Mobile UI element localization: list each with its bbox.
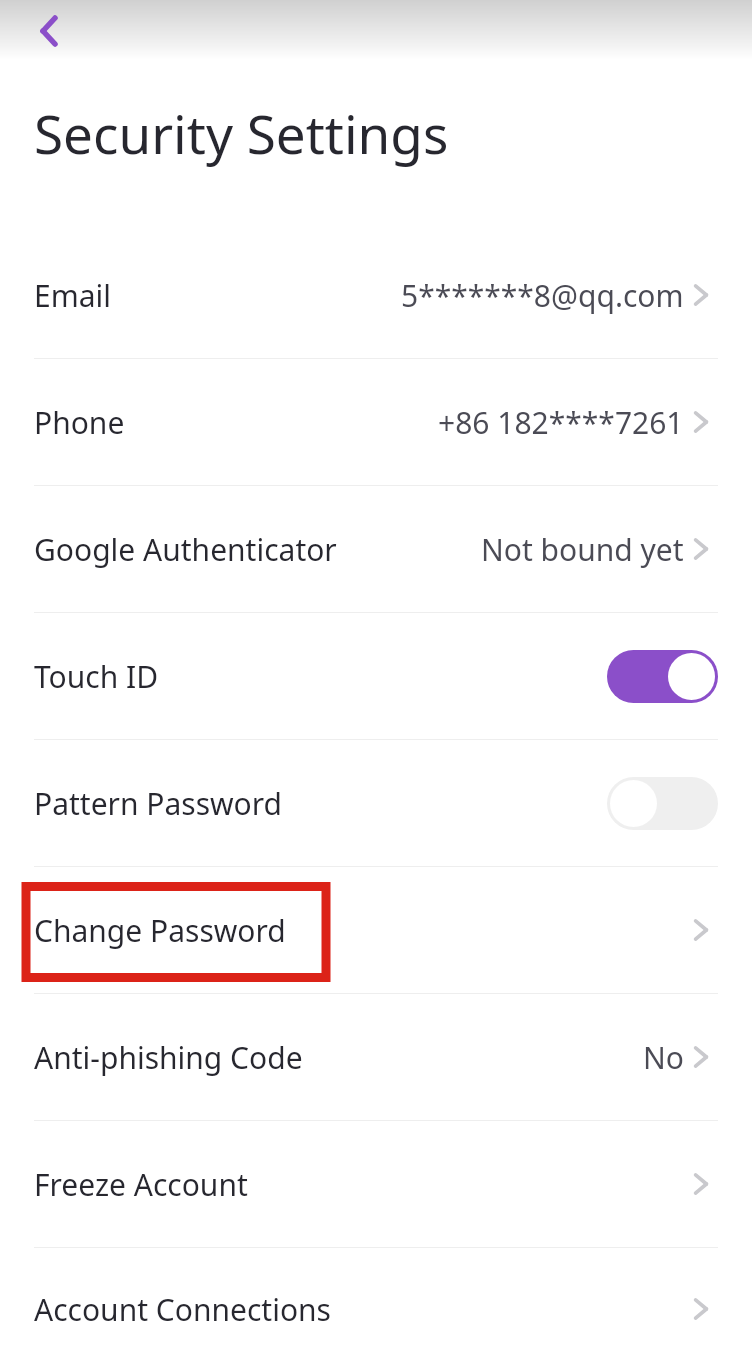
staticText: Touch ID [34, 656, 159, 697]
staticText: Phone [34, 402, 125, 443]
staticText: +86 182****7261 [438, 402, 684, 443]
staticText: Account Connections [34, 1289, 331, 1330]
staticText: Email [34, 275, 112, 316]
button[interactable]: Touch ID [0, 613, 752, 739]
button[interactable]: Anti-phishing Code [0, 994, 752, 1120]
staticText: Freeze Account [34, 1164, 248, 1205]
staticText: No [643, 1037, 684, 1078]
staticText: Pattern Password [34, 783, 282, 824]
staticText: Google Authenticator [34, 529, 337, 570]
staticText: Security Settings [34, 97, 449, 169]
staticText: Change Password [34, 910, 286, 951]
button[interactable]: Email [0, 232, 752, 358]
button[interactable]: Enabled [607, 650, 718, 703]
button[interactable]: Disabled [607, 777, 718, 830]
button[interactable]: Change Password [0, 867, 752, 993]
staticText: Anti-phishing Code [34, 1037, 303, 1078]
staticText: 5*******8@qq.com [401, 275, 684, 316]
button[interactable]: Freeze Account [0, 1121, 752, 1247]
button[interactable]: Account Connections [0, 1248, 752, 1370]
staticText: Not bound yet [481, 529, 684, 570]
button[interactable]: Back [21, 5, 73, 57]
button[interactable]: Pattern Password [0, 740, 752, 866]
button[interactable]: Google Authenticator [0, 486, 752, 612]
button[interactable]: Phone [0, 359, 752, 485]
